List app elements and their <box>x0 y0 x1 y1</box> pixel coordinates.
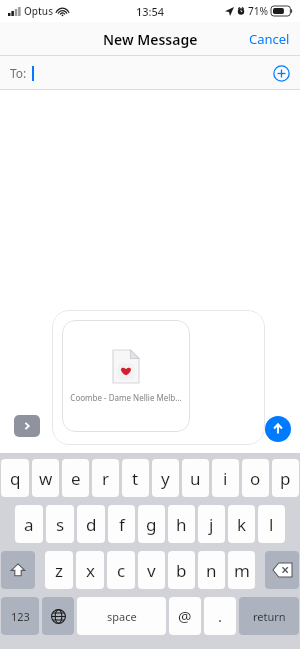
staticText: x <box>86 559 95 582</box>
staticText: r <box>102 467 110 490</box>
staticText: space <box>107 609 137 624</box>
staticText: return <box>253 609 286 624</box>
staticText: a <box>24 513 34 536</box>
button[interactable]: c <box>107 551 135 589</box>
button[interactable]: r <box>92 459 119 497</box>
button[interactable]: q <box>1 459 29 497</box>
button[interactable]: f <box>108 505 135 543</box>
button[interactable]: n <box>198 551 225 589</box>
button[interactable]: return <box>239 597 299 635</box>
staticText: c <box>117 559 126 582</box>
staticText: Optus <box>24 4 53 18</box>
button[interactable]: 123 <box>1 597 39 635</box>
staticText: b <box>176 559 187 582</box>
button[interactable]: t <box>122 459 149 497</box>
button[interactable]: y <box>152 459 179 497</box>
button[interactable]: i <box>212 459 239 497</box>
button[interactable]: p <box>272 459 299 497</box>
button[interactable]: x <box>76 551 104 589</box>
staticText: i <box>223 467 228 490</box>
staticText: Coombe - Dame Nellie Melb... <box>70 392 182 403</box>
button[interactable]: g <box>138 505 165 543</box>
staticText: To: <box>10 65 27 81</box>
button[interactable]: e <box>62 459 89 497</box>
staticText: z <box>55 559 63 582</box>
staticText: g <box>146 513 157 536</box>
button[interactable]: Coombe - Dame Nellie Melb... <box>52 310 265 445</box>
button[interactable]: Backspace <box>265 551 299 589</box>
button[interactable]: a <box>15 505 43 543</box>
staticText: n <box>206 559 217 582</box>
button[interactable]: @ <box>169 597 201 635</box>
staticText: j <box>209 513 214 536</box>
button[interactable]: s <box>46 505 74 543</box>
button[interactable]: Cancel <box>239 24 300 54</box>
staticText: u <box>190 467 201 490</box>
button[interactable]: Switch keyboard <box>42 597 74 635</box>
staticText: . <box>218 606 223 626</box>
button[interactable]: m <box>228 551 255 589</box>
staticText: f <box>119 513 125 536</box>
button[interactable]: k <box>228 505 255 543</box>
staticText: e <box>71 467 81 490</box>
button[interactable]: z <box>45 551 73 589</box>
button[interactable]: space <box>77 597 166 635</box>
staticText: 13:54 <box>136 4 165 19</box>
staticText: k <box>237 513 247 536</box>
button[interactable]: Add contact <box>268 60 294 86</box>
staticText: y <box>161 467 170 490</box>
staticText: 123 <box>11 609 30 624</box>
staticText: v <box>147 559 156 582</box>
button[interactable]: h <box>168 505 195 543</box>
staticText: h <box>176 513 187 536</box>
button[interactable]: d <box>77 505 105 543</box>
button[interactable]: . <box>204 597 236 635</box>
staticText: 71% <box>248 4 268 18</box>
button[interactable]: b <box>168 551 195 589</box>
staticText: New Message <box>103 30 198 49</box>
button[interactable]: u <box>182 459 209 497</box>
staticText: t <box>132 467 139 490</box>
staticText: p <box>280 467 291 490</box>
button[interactable]: Send <box>265 416 291 442</box>
button[interactable]: Shift <box>1 551 35 589</box>
button[interactable]: o <box>242 459 269 497</box>
button[interactable]: v <box>138 551 165 589</box>
staticText: q <box>10 467 21 490</box>
staticText: @ <box>178 606 192 626</box>
staticText: s <box>56 513 65 536</box>
button[interactable]: w <box>32 459 59 497</box>
button[interactable]: Expand <box>14 415 40 437</box>
button[interactable]: l <box>258 505 285 543</box>
button[interactable]: j <box>198 505 225 543</box>
staticText: l <box>269 513 274 536</box>
staticText: o <box>250 467 261 490</box>
staticText: w <box>39 467 53 490</box>
staticText: d <box>86 513 97 536</box>
staticText: m <box>234 559 250 582</box>
staticText: Cancel <box>249 30 290 48</box>
